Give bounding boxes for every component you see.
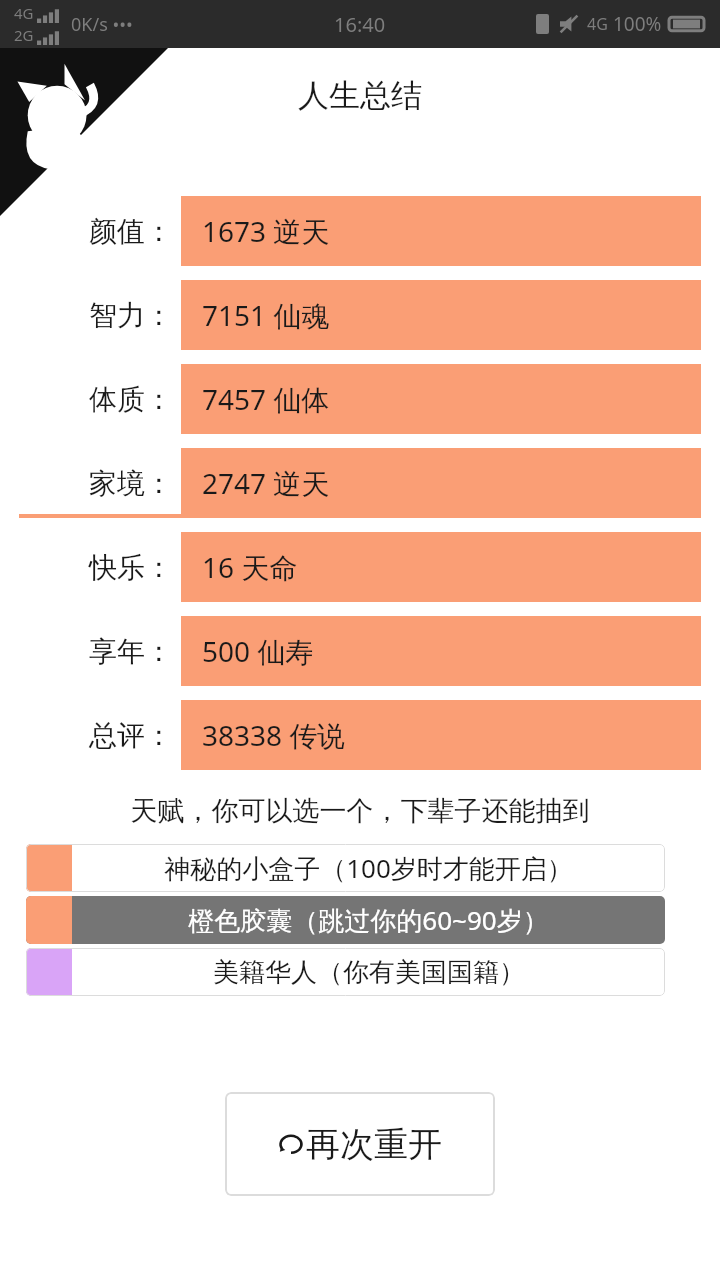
staticText: 38338 传说	[202, 716, 346, 754]
staticText: 享年：	[89, 634, 173, 669]
staticText: 4G	[14, 3, 34, 23]
staticText: 100%	[613, 11, 662, 37]
button[interactable]: 快乐：	[19, 532, 701, 602]
staticText: 智力：	[89, 298, 173, 333]
button[interactable]: 智力：	[19, 280, 701, 350]
staticText: 体质：	[89, 382, 173, 417]
button[interactable]: 总评：	[19, 700, 701, 770]
staticText: 2G	[14, 25, 34, 45]
staticText: 2747 逆天	[202, 464, 330, 502]
button[interactable]: 再次重开	[225, 1092, 495, 1196]
staticText: 神秘的小盒子（100岁时才能开启）	[164, 850, 573, 886]
staticText: 7457 仙体	[202, 380, 330, 418]
button[interactable]: 体质：	[19, 364, 701, 434]
button[interactable]: 神秘的小盒子（100岁时才能开启）	[26, 844, 665, 892]
staticText: 7151 仙魂	[202, 296, 330, 334]
staticText: 天赋，你可以选一个，下辈子还能抽到	[0, 794, 720, 828]
button[interactable]: 享年：	[19, 616, 701, 686]
button[interactable]: GitHub	[0, 48, 168, 216]
button[interactable]: 美籍华人（你有美国国籍）	[26, 948, 665, 996]
staticText: 16:40	[334, 11, 386, 38]
staticText: 美籍华人（你有美国国籍）	[213, 956, 525, 989]
staticText: 快乐：	[89, 550, 173, 585]
staticText: 再次重开	[306, 1123, 442, 1166]
staticText: 1673 逆天	[202, 212, 330, 250]
staticText: 4G	[587, 13, 608, 35]
staticText: 0K/s •••	[71, 12, 133, 37]
staticText: 人生总结	[298, 76, 422, 115]
button[interactable]: 颜值：	[19, 196, 701, 266]
button[interactable]: 橙色胶囊（跳过你的60~90岁）	[26, 896, 665, 944]
staticText: 16 天命	[202, 548, 298, 586]
staticText: 家境：	[89, 466, 173, 501]
staticText: 500 仙寿	[202, 632, 314, 670]
button[interactable]: 家境：	[19, 448, 701, 518]
staticText: 橙色胶囊（跳过你的60~90岁）	[188, 902, 549, 938]
staticText: 总评：	[89, 718, 173, 753]
staticText: 颜值：	[89, 214, 173, 249]
